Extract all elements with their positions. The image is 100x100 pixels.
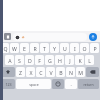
button[interactable]: X [26,67,35,77]
staticText: T [43,45,46,52]
button[interactable]: Shift [1,67,15,77]
button[interactable]: B [56,67,65,77]
staticText: N [69,69,73,76]
button[interactable]: . [65,79,77,89]
button[interactable]: E [20,43,29,53]
button[interactable]: Y [50,43,59,53]
button[interactable]: K [75,55,84,65]
staticText: H [58,57,62,64]
staticText: . [70,81,72,87]
button[interactable]: return [78,79,99,89]
staticText: K [78,57,82,64]
staticText: P [93,45,97,52]
staticText: R [33,45,37,52]
staticText: F [38,57,41,64]
staticText: Y [53,45,56,52]
button[interactable]: R [30,43,39,53]
button[interactable]: J [65,55,74,65]
button[interactable]: I [70,43,79,53]
button[interactable]: F [35,55,44,65]
staticText: O [82,45,87,52]
button[interactable]: P [90,43,99,53]
button[interactable]: U [60,43,69,53]
staticText: B [59,69,63,76]
staticText: V [49,69,53,76]
button[interactable]: 123 [1,79,15,89]
button[interactable]: L [85,55,94,65]
staticText: E [23,45,26,52]
staticText: D [28,57,32,64]
button[interactable]: Apps [4,33,11,40]
button[interactable]: V [46,67,55,77]
staticText: Z [19,69,22,76]
staticText: C [39,69,43,76]
staticText: A [8,57,12,64]
staticText: J [69,57,71,64]
button[interactable]: H [55,55,64,65]
button[interactable]: O [80,43,89,53]
staticText: M [78,69,83,76]
button[interactable]: M [76,67,85,77]
staticText: 123 [5,82,12,87]
button[interactable]: T [40,43,49,53]
staticText: Q [3,45,8,52]
button[interactable]: W [10,43,19,53]
staticText: G [48,57,52,64]
button[interactable]: S [15,55,24,65]
staticText: return [83,82,94,87]
staticText: U [63,45,67,52]
button[interactable]: Q [1,43,9,53]
button[interactable]: Delete [86,67,99,77]
button[interactable]: Emoji [52,79,64,89]
staticText: I [74,45,76,52]
staticText: space [29,82,39,87]
staticText: S [18,57,21,64]
button[interactable]: N [66,67,75,77]
staticText: L [88,57,91,64]
staticText: X [29,69,33,76]
button[interactable]: D [25,55,34,65]
button[interactable]: C [36,67,45,77]
staticText: W [12,45,17,52]
button[interactable]: Z [16,67,25,77]
button[interactable] [13,33,87,41]
button[interactable]: Send [89,33,97,41]
button[interactable]: G [45,55,54,65]
button[interactable]: A [5,55,14,65]
button[interactable]: space [16,79,51,89]
